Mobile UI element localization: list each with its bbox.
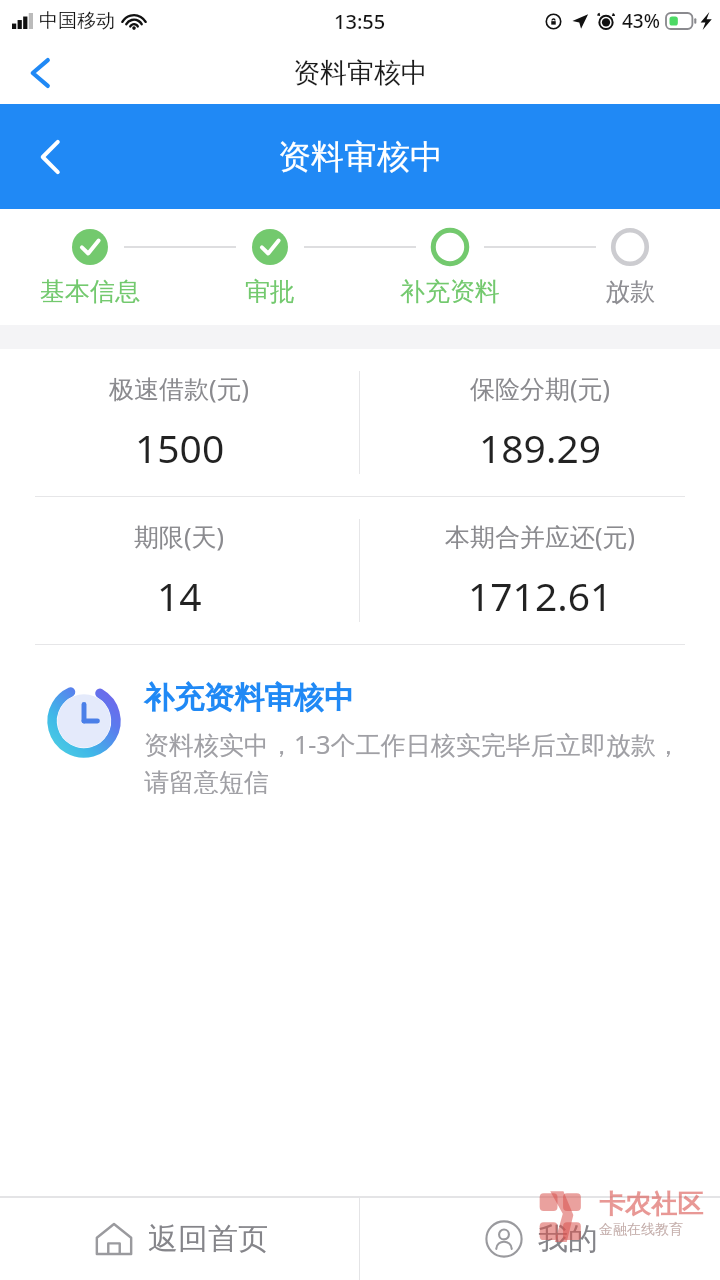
staticText: 189.29: [479, 421, 601, 474]
staticText: 43%: [622, 8, 660, 34]
staticText: 审批: [245, 276, 295, 307]
button[interactable]: 返回首页: [0, 1198, 359, 1280]
staticText: 基本信息: [40, 276, 140, 307]
button[interactable]: Back: [0, 42, 80, 104]
staticText: 卡农社区: [599, 1188, 703, 1221]
button[interactable]: 我的: [360, 1198, 720, 1280]
staticText: 14: [157, 569, 202, 622]
staticText: 资料审核中: [278, 136, 443, 178]
staticText: 补充资料: [400, 276, 500, 307]
staticText: 期限(天): [134, 519, 225, 553]
staticText: 本期合并应还(元): [445, 519, 636, 553]
staticText: 补充资料审核中: [144, 679, 354, 717]
button[interactable]: 返回: [0, 104, 100, 209]
staticText: 1712.61: [468, 569, 613, 622]
staticText: 1500: [135, 421, 225, 474]
staticText: 金融在线教育: [599, 1221, 683, 1239]
staticText: 极速借款(元): [109, 371, 250, 405]
staticText: 13:55: [334, 8, 386, 35]
staticText: 我的: [538, 1220, 598, 1258]
staticText: 放款: [605, 276, 655, 307]
staticText: 返回首页: [148, 1220, 268, 1258]
staticText: 资料审核中: [293, 56, 428, 90]
staticText: 资料核实中，1-3个工作日核实完毕后立即放款，请留意短信: [144, 727, 690, 799]
staticText: 中国移动: [39, 9, 115, 33]
staticText: 保险分期(元): [470, 371, 611, 405]
